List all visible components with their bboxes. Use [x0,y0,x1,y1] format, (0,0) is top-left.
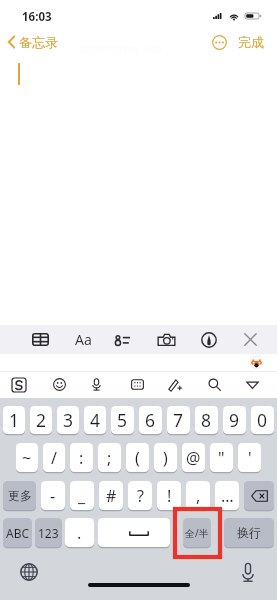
button[interactable]: ABC [3,518,32,547]
button[interactable]: 全/半 [183,518,211,547]
button[interactable]: 7 [167,406,190,434]
staticText: ~ [22,447,32,469]
button[interactable]: ) [154,443,177,472]
button[interactable]: Space [98,518,170,547]
staticText: 4 [90,408,101,432]
button[interactable]: ; [98,443,121,472]
staticText: 3 [63,408,74,432]
button[interactable]: 2 [30,406,52,434]
button[interactable]: 换行 [224,518,274,547]
staticText: ( [135,447,140,469]
button[interactable]: Checklist [109,325,135,354]
button[interactable]: 8 [195,406,218,434]
staticText: ! [167,485,172,507]
button[interactable]: Dictation [236,560,260,584]
button[interactable]: / [43,443,65,472]
staticText: … [221,485,234,507]
button[interactable]: More options [212,35,227,50]
button[interactable]: 1 [3,406,25,434]
button[interactable]: Handwriting [162,371,188,398]
staticText: @ [186,447,201,469]
button[interactable]: , [186,481,210,510]
staticText: Aa [75,330,92,349]
button[interactable]: Input method [6,371,32,398]
staticText: 2 [36,408,47,432]
staticText: / [51,447,57,469]
button[interactable]: 更多 [3,481,36,510]
button[interactable]: … [215,481,239,510]
button[interactable]: ? [128,481,152,510]
staticText: ) [163,447,168,469]
button[interactable]: Search [201,371,227,398]
button[interactable]: 6 [139,406,162,434]
staticText: , [196,485,201,507]
button[interactable]: Profile avatar [250,356,263,369]
staticText: 6 [145,408,156,432]
staticText: - [50,485,56,507]
button[interactable]: ~ [16,443,38,472]
button[interactable]: Aa [70,325,96,354]
button[interactable]: ( [126,443,149,472]
staticText: # [106,485,117,507]
staticText: ; [107,447,112,469]
button[interactable]: 4 [84,406,106,434]
button[interactable]: Voice input [83,371,109,398]
button[interactable]: Markup [196,325,222,354]
button[interactable]: Switch language [17,560,41,584]
button[interactable]: 5 [111,406,134,434]
button[interactable]: 备忘录 [8,34,58,50]
staticText: : [79,447,84,469]
button[interactable]: # [99,481,123,510]
button[interactable]: Camera [153,325,179,354]
staticText: 0 [257,408,268,432]
button[interactable]: Close [237,325,263,354]
staticText: " [218,447,225,469]
staticText: 123 [38,525,59,541]
button[interactable]: 完成 [238,34,264,50]
button[interactable]: _ [70,481,94,510]
staticText: 备忘录 [19,34,58,50]
button[interactable]: Keyboard layout [124,371,150,398]
staticText: 更多 [8,488,32,503]
staticText: 16:03 [22,9,52,25]
staticText: 全/半 [185,526,209,540]
button[interactable]: : [70,443,93,472]
staticText: 9 [229,408,240,432]
button[interactable]: 9 [223,406,246,434]
staticText: 8 [201,408,212,432]
staticText: ' [248,447,252,469]
button[interactable]: 0 [251,406,274,434]
button[interactable]: - [41,481,65,510]
staticText: 换行 [237,525,261,540]
staticText: . [77,522,82,544]
staticText: ? [137,485,144,507]
button[interactable]: ! [157,481,181,510]
button[interactable]: ' [238,443,261,472]
staticText: 7 [173,408,184,432]
button[interactable]: " [210,443,233,472]
staticText: 1 [9,408,20,432]
button[interactable]: Table [27,325,53,354]
button[interactable]: Delete [244,481,274,510]
button[interactable]: . [65,518,94,547]
staticText: 5 [117,408,128,432]
button[interactable]: 3 [57,406,79,434]
button[interactable]: Emoji [46,371,72,398]
staticText: _ [78,485,86,507]
button[interactable]: Collapse [239,371,265,398]
staticText: ABC [6,525,30,541]
button[interactable]: 123 [35,518,62,547]
button[interactable]: @ [182,443,205,472]
